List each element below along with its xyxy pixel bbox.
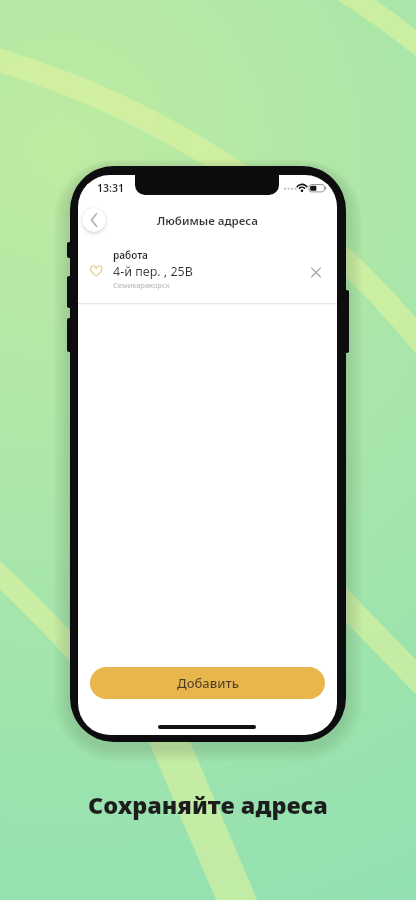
staticText: Сохраняйте адреса bbox=[88, 789, 328, 821]
button[interactable] bbox=[78, 241, 337, 304]
staticText: Любимые адреса bbox=[157, 213, 258, 229]
staticText: Семикаракорск bbox=[113, 280, 170, 290]
staticText: Добавить bbox=[177, 674, 239, 692]
staticText: работа bbox=[113, 248, 148, 262]
button[interactable]: Добавить bbox=[90, 667, 325, 699]
staticText: 4-й пер. , 25В bbox=[113, 263, 193, 280]
staticText: 13:31 bbox=[97, 181, 124, 195]
button[interactable] bbox=[82, 208, 106, 232]
